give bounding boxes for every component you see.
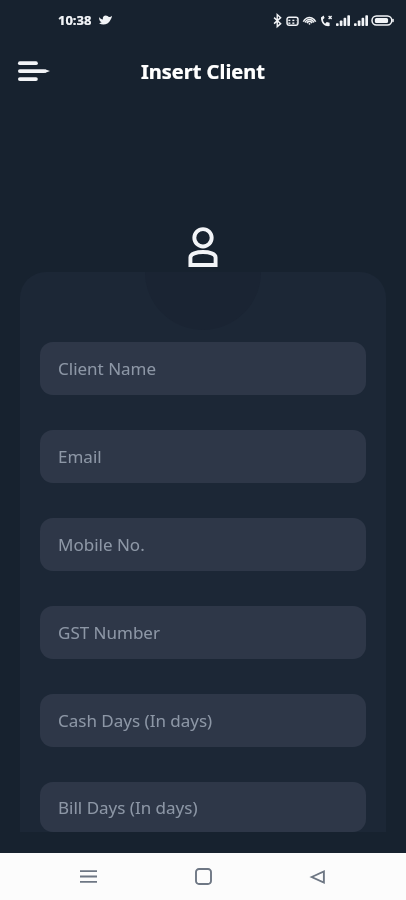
button[interactable]: Back bbox=[291, 853, 345, 900]
staticText: Client Name bbox=[58, 357, 157, 380]
button[interactable]: Mobile No. bbox=[40, 518, 366, 571]
button[interactable]: Recent apps bbox=[61, 853, 115, 900]
button[interactable]: Client Name bbox=[40, 342, 366, 395]
staticText: Insert Client bbox=[141, 58, 265, 85]
button[interactable]: Open navigation menu bbox=[10, 47, 58, 95]
staticText: GST Number bbox=[58, 621, 160, 644]
button[interactable]: Cash Days (In days) bbox=[40, 694, 366, 747]
button[interactable]: Bill Days (In days) bbox=[40, 782, 366, 832]
staticText: Mobile No. bbox=[58, 533, 145, 556]
button[interactable]: Email bbox=[40, 430, 366, 483]
staticText: Bill Days (In days) bbox=[58, 796, 198, 819]
button[interactable]: GST Number bbox=[40, 606, 366, 659]
staticText: Email bbox=[58, 445, 102, 468]
staticText: 10:38 bbox=[58, 11, 92, 29]
staticText: Cash Days (In days) bbox=[58, 709, 213, 732]
button[interactable]: Client avatar bbox=[175, 219, 231, 275]
button[interactable]: Home bbox=[176, 853, 230, 900]
